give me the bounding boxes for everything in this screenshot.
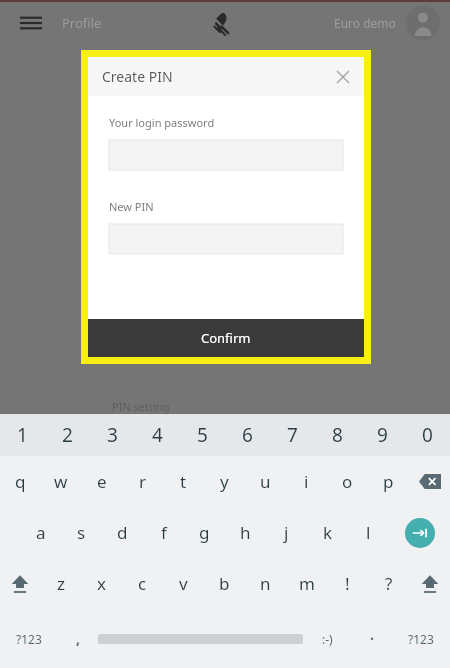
staticText: 3 — [107, 422, 118, 448]
button[interactable]: c — [122, 558, 163, 609]
button[interactable]: o — [327, 456, 368, 507]
button[interactable]: Profile — [62, 14, 102, 32]
staticText: 9 — [377, 422, 388, 448]
button[interactable]: 1 — [0, 414, 45, 456]
button[interactable]: r — [122, 456, 163, 507]
staticText: 8 — [332, 422, 343, 448]
button[interactable]: u — [245, 456, 286, 507]
staticText: b — [219, 572, 230, 595]
staticText: New PIN — [109, 199, 154, 214]
staticText: Confirm — [201, 329, 251, 347]
button[interactable]: s — [61, 507, 102, 558]
staticText: ?123 — [408, 631, 434, 647]
button[interactable]: m — [286, 558, 327, 609]
button[interactable]: ?123 — [392, 609, 450, 668]
button[interactable]: n — [245, 558, 286, 609]
button[interactable]: 5 — [180, 414, 225, 456]
button[interactable]: Menu — [14, 6, 48, 40]
staticText: 7 — [287, 422, 298, 448]
button[interactable]: Shift — [409, 558, 450, 609]
staticText: r — [139, 470, 147, 493]
button[interactable]: i — [286, 456, 327, 507]
button[interactable]: ? — [368, 558, 409, 609]
staticText: c — [138, 572, 147, 595]
staticText: q — [15, 470, 26, 493]
button[interactable]: g — [184, 507, 225, 558]
staticText: v — [179, 572, 188, 595]
button[interactable]: a — [20, 507, 61, 558]
button[interactable]: 9 — [360, 414, 405, 456]
button[interactable]: e — [81, 456, 122, 507]
button[interactable]: w — [40, 456, 81, 507]
button[interactable]: Space — [98, 609, 303, 668]
button[interactable]: Shift — [0, 558, 40, 609]
button[interactable]: 0 — [405, 414, 450, 456]
staticText: y — [220, 470, 229, 493]
staticText: :-) — [322, 631, 333, 647]
button[interactable]: 3 — [90, 414, 135, 456]
staticText: z — [57, 572, 65, 595]
button[interactable]: j — [266, 507, 307, 558]
button[interactable]: Confirm — [88, 319, 364, 357]
staticText: p — [383, 470, 394, 493]
staticText: 0 — [422, 422, 433, 448]
staticText: 4 — [152, 422, 163, 448]
staticText: j — [284, 521, 289, 544]
button[interactable]: t — [163, 456, 204, 507]
button[interactable]: k — [307, 507, 348, 558]
button[interactable]: y — [204, 456, 245, 507]
staticText: t — [180, 470, 187, 493]
staticText: e — [97, 470, 107, 493]
button[interactable]: v — [163, 558, 204, 609]
staticText: l — [366, 521, 371, 544]
staticText: a — [36, 521, 46, 544]
staticText: o — [342, 470, 353, 493]
staticText: n — [260, 572, 271, 595]
button[interactable]: 4 — [135, 414, 180, 456]
button[interactable]: f — [143, 507, 184, 558]
button[interactable]: h — [225, 507, 266, 558]
button[interactable]: ! — [327, 558, 368, 609]
staticText: i — [304, 470, 309, 493]
staticText: · — [370, 629, 374, 648]
staticText: k — [323, 521, 333, 544]
staticText: w — [54, 470, 68, 493]
button[interactable]: 6 — [225, 414, 270, 456]
staticText: g — [199, 521, 210, 544]
staticText: x — [97, 572, 106, 595]
staticText: m — [299, 572, 315, 595]
button[interactable]: Rocket — [199, 4, 237, 42]
button[interactable]: Account — [406, 6, 440, 40]
button[interactable]: , — [58, 609, 98, 668]
button[interactable]: Euro demo — [334, 15, 396, 31]
staticText: Create PIN — [102, 67, 173, 86]
button[interactable]: Enter — [389, 507, 450, 558]
button[interactable]: z — [40, 558, 81, 609]
staticText: 2 — [62, 422, 73, 448]
button[interactable]: q — [0, 456, 40, 507]
staticText: ? — [385, 572, 393, 595]
button[interactable]: b — [204, 558, 245, 609]
button[interactable]: ?123 — [0, 609, 58, 668]
button[interactable]: l — [348, 507, 389, 558]
staticText: PIN setting — [112, 399, 170, 414]
button[interactable]: x — [81, 558, 122, 609]
button[interactable]: 7 — [270, 414, 315, 456]
button[interactable]: 8 — [315, 414, 360, 456]
staticText: s — [77, 521, 86, 544]
staticText: 5 — [197, 422, 208, 448]
staticText: d — [117, 521, 128, 544]
button[interactable]: 2 — [45, 414, 90, 456]
button[interactable]: Close — [330, 64, 356, 90]
button[interactable]: d — [102, 507, 143, 558]
staticText: ?123 — [16, 631, 42, 647]
button[interactable]: Backspace — [409, 456, 450, 507]
staticText: h — [240, 521, 251, 544]
button[interactable]: :-) — [303, 609, 352, 668]
staticText: 6 — [242, 422, 253, 448]
button[interactable]: p — [368, 456, 409, 507]
staticText: 1 — [17, 422, 28, 448]
button[interactable]: · — [352, 609, 392, 668]
